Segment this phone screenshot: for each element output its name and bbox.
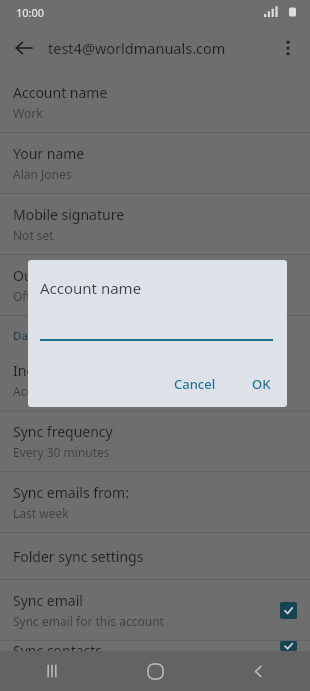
staticText: Every 30 minutes <box>13 444 110 460</box>
button[interactable]: Toggle Sync contacts <box>280 641 297 651</box>
staticText: 10:00 <box>16 5 45 20</box>
staticText: Mobile signature <box>13 205 125 224</box>
button[interactable]: Sync frequency <box>0 411 310 471</box>
staticText: Incoming settings <box>13 361 132 380</box>
staticText: test4@worldmanuals.com <box>48 38 266 58</box>
staticText: Not set <box>13 227 54 243</box>
staticText: Last week <box>13 505 69 521</box>
staticText: Cancel <box>174 375 216 393</box>
button[interactable]: Incoming settings <box>0 350 310 410</box>
staticText: Account name <box>40 278 142 298</box>
staticText: Your name <box>13 144 85 163</box>
button[interactable]: OK <box>242 369 281 399</box>
staticText: Folder sync settings <box>13 547 144 566</box>
button[interactable]: Folder sync settings <box>0 533 310 579</box>
button[interactable]: Cancel <box>164 369 226 399</box>
staticText: Work <box>13 105 43 121</box>
button[interactable]: Back <box>207 651 310 691</box>
button[interactable]: Your name <box>0 133 310 193</box>
button[interactable]: Sync emails from: <box>0 472 310 532</box>
staticText: Sync frequency <box>13 422 113 441</box>
button[interactable]: More options <box>266 26 310 70</box>
button[interactable]: Out of office reply <box>0 255 310 315</box>
button[interactable]: Home <box>104 651 207 691</box>
button[interactable]: Sync contacts <box>0 641 310 651</box>
staticText: Alan Jones <box>13 166 72 182</box>
staticText: Account name <box>13 83 108 102</box>
staticText: Account settings <box>13 383 107 399</box>
staticText: Sync email for this account <box>13 613 164 629</box>
button[interactable]: Mobile signature <box>0 194 310 254</box>
button[interactable]: Account name <box>0 72 310 132</box>
staticText: Off <box>13 288 31 304</box>
button[interactable]: Back <box>0 24 48 72</box>
staticText: Sync contacts <box>13 641 103 651</box>
button[interactable]: Sync email <box>0 580 310 640</box>
staticText: Sync email <box>13 591 83 610</box>
staticText: Data usage <box>13 328 76 344</box>
staticText: Out of office reply <box>13 266 131 285</box>
staticText: Sync emails from: <box>13 483 129 502</box>
button[interactable]: Recent apps <box>0 651 104 691</box>
staticText: OK <box>252 375 271 393</box>
button[interactable]: Toggle Sync email <box>280 602 297 619</box>
